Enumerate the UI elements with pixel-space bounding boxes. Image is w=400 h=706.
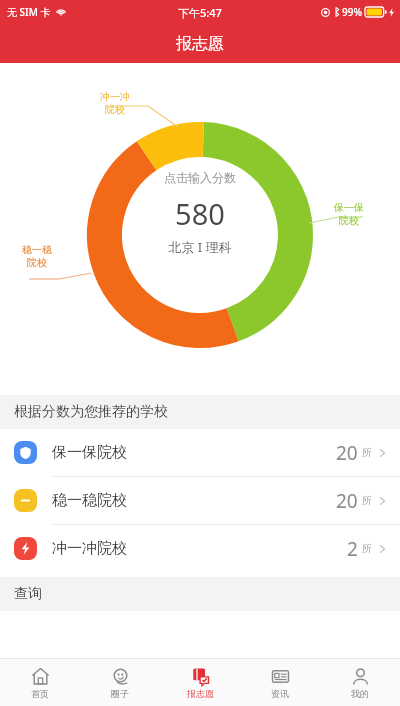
staticText: 报志愿 bbox=[176, 34, 224, 54]
staticText: 资讯 bbox=[271, 688, 289, 699]
button[interactable]: 我的 bbox=[320, 659, 400, 706]
button[interactable]: 点击输入分数 bbox=[120, 170, 280, 256]
staticText: 所 bbox=[362, 494, 372, 507]
staticText: 2 bbox=[347, 536, 358, 562]
button[interactable]: 稳一稳院校 bbox=[0, 477, 400, 524]
staticText: 无 SIM 卡 bbox=[7, 5, 51, 19]
staticText: 所 bbox=[362, 542, 372, 555]
staticText: 首页 bbox=[31, 688, 49, 699]
staticText: 我的 bbox=[351, 688, 369, 699]
button[interactable]: 圈子 bbox=[80, 659, 160, 706]
staticText: 下午5:47 bbox=[178, 5, 222, 20]
staticText: 保一保 bbox=[334, 201, 364, 214]
staticText: 保一保院校 bbox=[52, 443, 127, 462]
button[interactable]: 保一保院校 bbox=[0, 429, 400, 476]
staticText: 580 bbox=[175, 194, 225, 233]
staticText: 院校 bbox=[105, 103, 125, 116]
button[interactable]: 资讯 bbox=[240, 659, 320, 706]
staticText: 冲一冲 bbox=[100, 90, 130, 103]
staticText: 北京 I 理科 bbox=[168, 238, 232, 256]
staticText: 点击输入分数 bbox=[164, 170, 236, 185]
staticText: 稳一稳 bbox=[22, 243, 52, 256]
staticText: 99% bbox=[342, 5, 362, 19]
staticText: 根据分数为您推荐的学校 bbox=[14, 403, 168, 421]
staticText: 20 bbox=[336, 440, 358, 466]
staticText: 院校 bbox=[339, 214, 359, 227]
button[interactable]: 报志愿 bbox=[160, 659, 240, 706]
staticText: 院校 bbox=[27, 256, 47, 269]
button[interactable]: 首页 bbox=[0, 659, 80, 706]
staticText: 稳一稳院校 bbox=[52, 491, 127, 510]
staticText: 20 bbox=[336, 488, 358, 514]
staticText: 报志愿 bbox=[187, 688, 214, 699]
staticText: 查询 bbox=[14, 585, 42, 603]
staticText: 所 bbox=[362, 446, 372, 459]
staticText: 冲一冲院校 bbox=[52, 539, 127, 558]
staticText: 圈子 bbox=[111, 688, 129, 699]
button[interactable]: 冲一冲院校 bbox=[0, 525, 400, 572]
